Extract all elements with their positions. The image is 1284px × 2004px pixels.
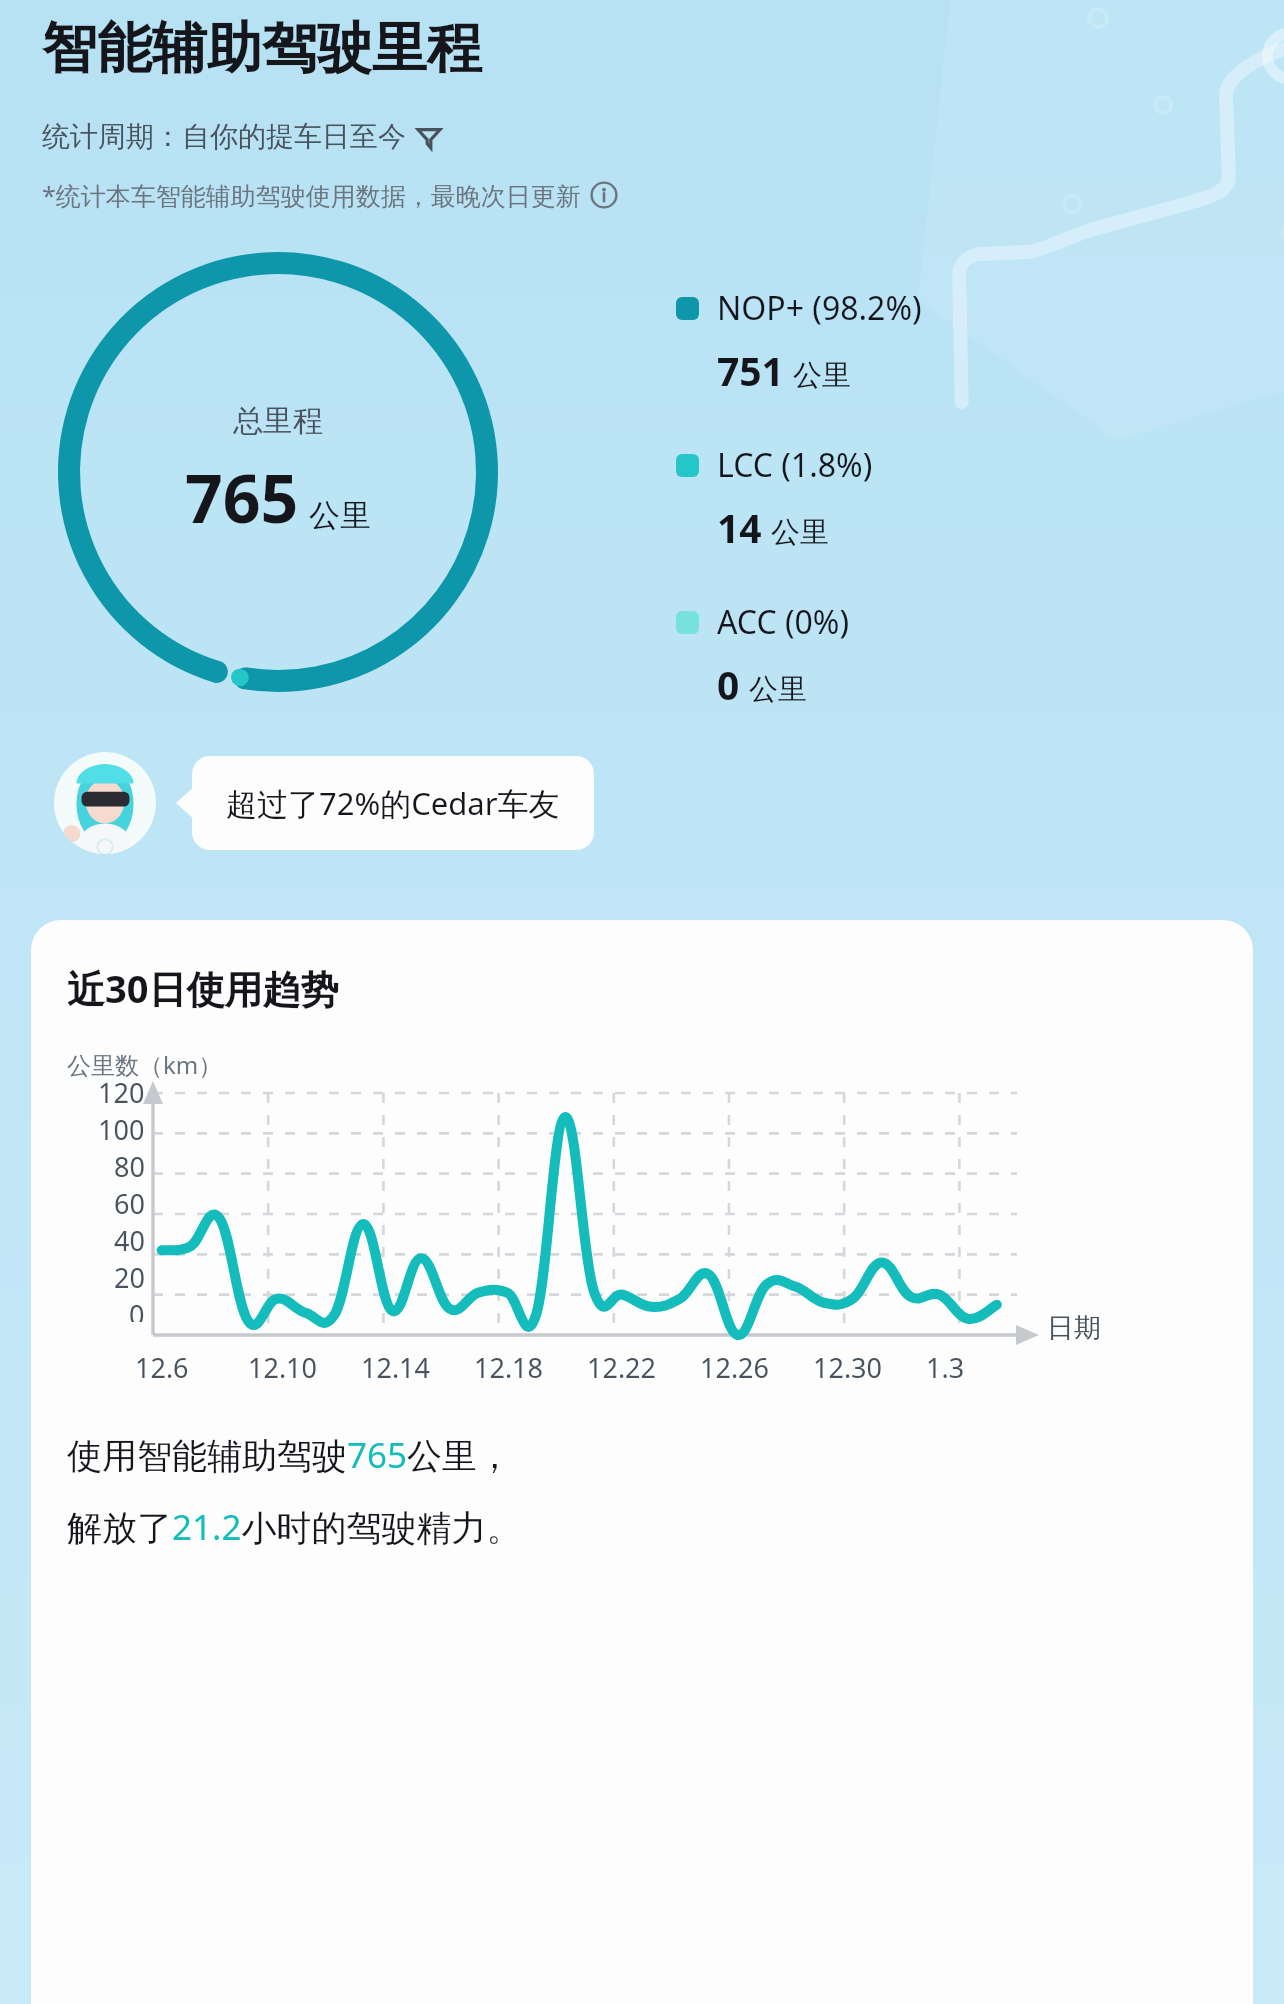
staticText: 日期 [1047,1311,1101,1345]
staticText: 765 [185,452,299,542]
staticText: 12.30 [813,1349,883,1386]
staticText: 公里数（km） [67,1048,223,1081]
staticText: ACC (0%) [717,600,850,644]
staticText: 120 [98,1074,145,1111]
staticText: 20 [114,1259,145,1296]
staticText: 751 [717,344,784,397]
button[interactable]: NOP+ (98.2%) [676,286,922,397]
staticText: 14 [717,501,762,554]
staticText: 公里 [771,514,829,551]
staticText: 0 [129,1296,145,1322]
staticText: 12.10 [248,1349,318,1386]
other: 用户头像 [54,752,156,854]
staticText: 超过了72%的Cedar车友 [226,782,560,824]
staticText: 公里 [749,671,807,708]
button[interactable]: LCC (1.8%) [676,443,873,554]
staticText: 80 [114,1148,145,1185]
button[interactable]: 说明 [590,181,618,209]
staticText: 统计周期：自你的提车日至今 [42,119,406,154]
staticText: *统计本车智能辅助驾驶使用数据，最晚次日更新 [42,178,581,212]
staticText: 使用智能辅助驾驶765公里， [67,1431,513,1479]
staticText: 40 [114,1222,145,1259]
button[interactable]: 统计周期：自你的提车日至今 [42,119,442,154]
staticText: 1.3 [926,1349,965,1386]
staticText: 12.22 [587,1349,657,1386]
staticText: 12.26 [700,1349,770,1386]
staticText: 12.18 [474,1349,544,1386]
staticText: 智能辅助驾驶里程 [42,14,482,83]
staticText: 60 [114,1185,145,1222]
staticText: NOP+ (98.2%) [717,286,922,330]
staticText: 12.14 [361,1349,431,1386]
button[interactable]: 近30日使用趋势 [31,920,1253,2004]
staticText: 100 [98,1111,145,1148]
button[interactable]: ACC (0%) [676,600,850,711]
staticText: 公里 [309,496,371,535]
staticText: 公里 [793,357,851,394]
staticText: 0 [717,658,740,711]
staticText: 总里程 [233,402,323,440]
staticText: 解放了21.2小时的驾驶精力。 [67,1503,522,1551]
staticText: 近30日使用趋势 [67,962,339,1014]
button[interactable]: 超过了72%的Cedar车友 [192,756,594,850]
staticText: 12.6 [135,1349,189,1386]
staticText: LCC (1.8%) [717,443,873,487]
